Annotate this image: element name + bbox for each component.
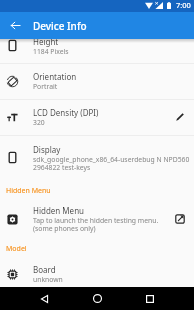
staticText: Model bbox=[6, 244, 27, 254]
button[interactable]: Board bbox=[0, 258, 194, 290]
staticText: 320 bbox=[33, 118, 45, 127]
button[interactable]: Height bbox=[0, 28, 194, 63]
button[interactable]: Recent apps bbox=[135, 287, 165, 310]
button[interactable]: Orientation bbox=[0, 63, 194, 99]
staticText: unknown bbox=[33, 275, 63, 284]
button[interactable]: Edit bbox=[166, 99, 194, 135]
staticText: Height bbox=[33, 36, 59, 47]
staticText: sdk_google_phone_x86_64-userdebug N NPD5… bbox=[33, 155, 190, 172]
staticText: Device Info bbox=[33, 19, 87, 33]
staticText: Orientation bbox=[33, 71, 77, 82]
button[interactable]: Open hidden menu bbox=[166, 201, 194, 237]
button[interactable]: Home bbox=[82, 287, 112, 310]
button[interactable]: Hidden Menu bbox=[0, 201, 194, 237]
staticText: Portrait bbox=[33, 82, 58, 91]
staticText: LCD Density (DPI) bbox=[33, 107, 99, 118]
staticText: Board bbox=[33, 264, 56, 275]
button[interactable]: LCD Density (DPI) bbox=[0, 99, 194, 135]
staticText: Display bbox=[33, 144, 61, 155]
staticText: Hidden Menu bbox=[33, 205, 85, 216]
button[interactable]: Display bbox=[0, 135, 194, 180]
staticText: Tap to launch the hidden testing menu. (… bbox=[33, 216, 159, 233]
button[interactable]: Back bbox=[29, 287, 59, 310]
staticText: Hidden Menu bbox=[6, 186, 51, 196]
button[interactable]: Back bbox=[2, 12, 29, 39]
staticText: 1184 Pixels bbox=[33, 47, 69, 56]
staticText: 7:00 bbox=[176, 0, 191, 10]
